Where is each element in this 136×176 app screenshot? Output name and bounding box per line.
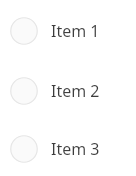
staticText: Item 2 [51, 80, 100, 102]
other: Select option [10, 17, 38, 45]
button[interactable]: Select option [0, 1, 136, 61]
staticText: Item 1 [51, 20, 100, 42]
other: Select option [10, 77, 38, 105]
button[interactable]: Select option [0, 61, 136, 121]
staticText: Item 3 [51, 138, 100, 160]
button[interactable]: Select option [0, 121, 136, 176]
other: Select option [10, 135, 38, 163]
